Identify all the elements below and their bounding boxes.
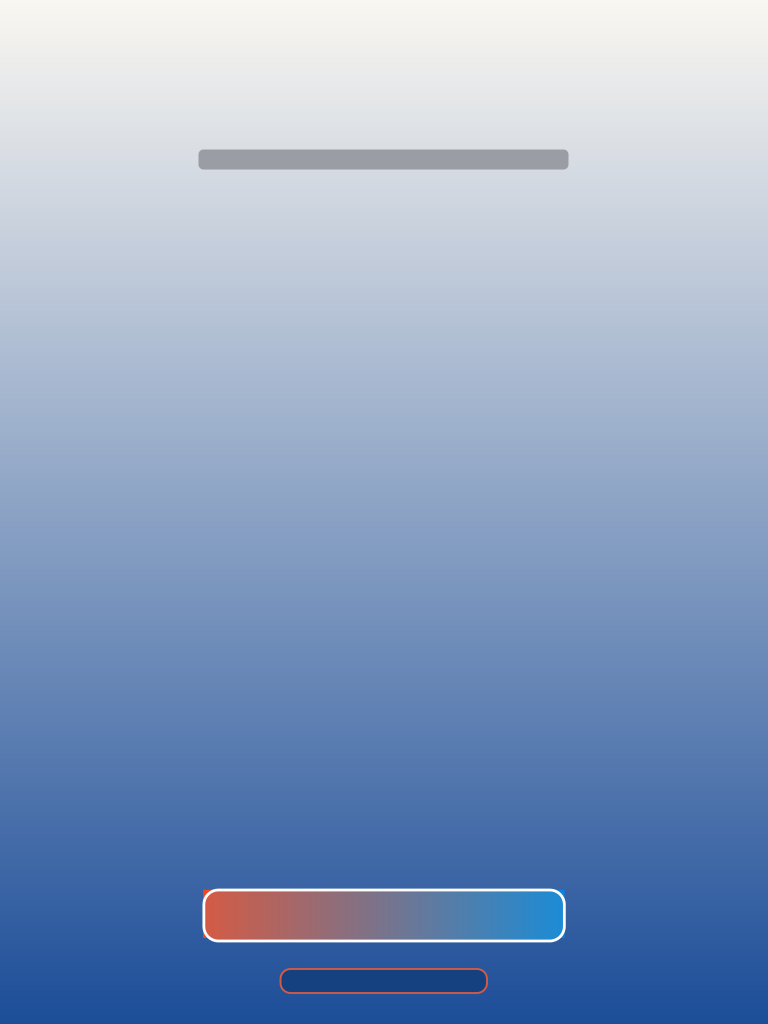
button[interactable]: Secondary action [280, 969, 487, 993]
button[interactable]: Primary action [204, 890, 564, 941]
